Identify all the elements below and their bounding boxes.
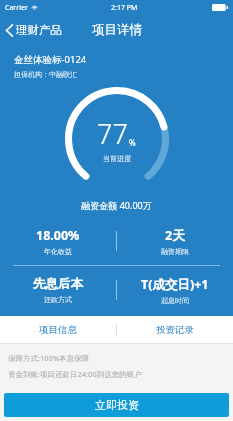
staticText: 起息时间: [161, 296, 189, 305]
staticText: 项目信息: [39, 324, 77, 336]
staticText: 立即投资: [95, 398, 139, 412]
staticText: 理财产品: [16, 23, 62, 37]
staticText: 先息后本: [33, 276, 83, 292]
staticText: 年化收益: [44, 247, 72, 256]
staticText: %: [129, 137, 136, 148]
staticText: 投资记录: [156, 324, 194, 336]
staticText: 融资期限: [161, 247, 189, 256]
staticText: 当前进度: [103, 154, 131, 163]
staticText: 18.00%: [36, 227, 80, 244]
button[interactable]: T(成交日)+1: [117, 273, 233, 307]
button[interactable]: 18.00%: [0, 224, 116, 258]
staticText: 2天: [165, 227, 185, 244]
staticText: T(成交日)+1: [141, 276, 209, 293]
button[interactable]: 投资记录: [117, 316, 233, 343]
button[interactable]: Back 理财产品: [0, 19, 68, 41]
staticText: 77: [97, 115, 128, 152]
button[interactable]: 项目信息: [0, 316, 116, 343]
button[interactable]: 立即投资: [4, 393, 229, 417]
button[interactable]: 2天: [117, 224, 233, 258]
staticText: 保障方式:100%本息保障: [8, 353, 233, 363]
staticText: 担保机构：中融联汇: [14, 70, 77, 79]
staticText: 2:17 PM: [111, 3, 138, 13]
staticText: 还款方式: [44, 295, 72, 304]
staticText: Carrier: [5, 3, 28, 13]
staticText: 金丝体验标-0124: [14, 53, 87, 66]
button[interactable]: 先息后本: [0, 273, 116, 307]
staticText: 资金到账:项目还款日24:00到达您的账户: [8, 369, 233, 379]
staticText: 融资金额 40.00万: [0, 199, 233, 211]
staticText: 项目详情: [92, 22, 142, 38]
